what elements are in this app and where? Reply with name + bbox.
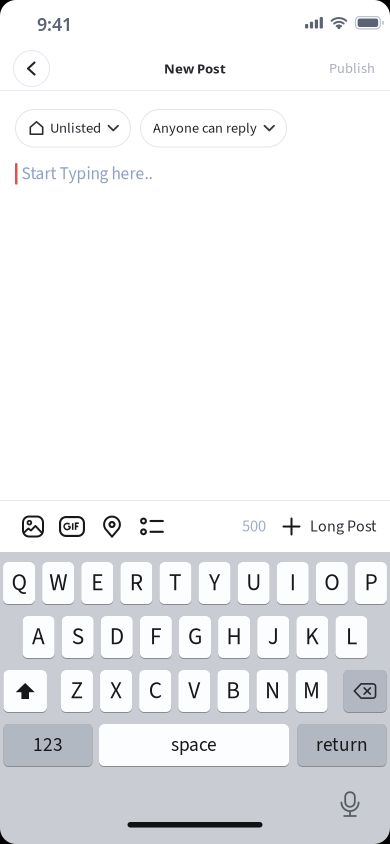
- staticText: T: [169, 566, 182, 600]
- staticText: Publish: [329, 58, 375, 79]
- staticText: O: [324, 566, 339, 600]
- button[interactable]: A: [23, 616, 55, 659]
- staticText: R: [130, 566, 143, 600]
- staticText: H: [227, 620, 242, 654]
- staticText: U: [246, 566, 261, 600]
- button[interactable]: R: [120, 562, 152, 605]
- button[interactable]: Unlisted: [15, 109, 131, 147]
- staticText: C: [149, 674, 162, 708]
- staticText: X: [110, 674, 122, 708]
- staticText: Y: [209, 566, 220, 600]
- staticText: Long Post: [310, 515, 376, 538]
- button[interactable]: Publish: [329, 58, 375, 79]
- staticText: Q: [12, 566, 27, 600]
- staticText: Z: [70, 674, 83, 708]
- staticText: N: [265, 674, 280, 708]
- staticText: M: [303, 674, 320, 708]
- staticText: S: [72, 620, 84, 654]
- button[interactable]: 123: [3, 724, 92, 767]
- staticText: P: [364, 566, 377, 600]
- button[interactable]: Dictate: [330, 784, 370, 824]
- staticText: 500: [242, 515, 266, 538]
- button[interactable]: Shift: [3, 670, 47, 713]
- button[interactable]: E: [81, 562, 113, 605]
- button[interactable]: W: [42, 562, 74, 605]
- staticText: space: [171, 731, 217, 759]
- button[interactable]: return: [297, 724, 386, 767]
- button[interactable]: Delete: [344, 670, 387, 713]
- staticText: J: [268, 620, 279, 654]
- staticText: G: [188, 620, 202, 654]
- button[interactable]: Add location: [102, 515, 123, 537]
- button[interactable]: K: [296, 616, 328, 659]
- staticText: I: [290, 566, 296, 600]
- staticText: F: [150, 620, 162, 654]
- button[interactable]: N: [256, 670, 288, 713]
- button[interactable]: Add photo: [22, 515, 44, 537]
- button[interactable]: Add GIF: [59, 516, 85, 537]
- button[interactable]: G: [179, 616, 211, 659]
- staticText: 123: [33, 731, 63, 759]
- staticText: E: [91, 566, 103, 600]
- button[interactable]: Add poll: [140, 517, 164, 535]
- staticText: B: [226, 674, 240, 708]
- staticText: A: [32, 620, 45, 654]
- button[interactable]: U: [238, 562, 270, 605]
- button[interactable]: S: [62, 616, 94, 659]
- button[interactable]: Y: [199, 562, 231, 605]
- staticText: L: [346, 620, 357, 654]
- button[interactable]: X: [100, 670, 132, 713]
- staticText: Anyone can reply: [153, 118, 257, 138]
- button[interactable]: L: [335, 616, 367, 659]
- staticText: V: [188, 674, 200, 708]
- button[interactable]: O: [316, 562, 348, 605]
- button[interactable]: D: [101, 616, 133, 659]
- button[interactable]: B: [217, 670, 249, 713]
- button[interactable]: I: [277, 562, 309, 605]
- staticText: Unlisted: [50, 118, 101, 139]
- staticText: W: [49, 566, 67, 600]
- button[interactable]: Q: [3, 562, 35, 605]
- button[interactable]: Z: [61, 670, 93, 713]
- button[interactable]: H: [218, 616, 250, 659]
- button[interactable]: Anyone can reply: [140, 109, 287, 147]
- button[interactable]: V: [178, 670, 210, 713]
- staticText: New Post: [164, 59, 226, 77]
- button[interactable]: space: [99, 724, 289, 767]
- button[interactable]: T: [159, 562, 191, 605]
- button[interactable]: P: [355, 562, 387, 605]
- staticText: 9:41: [37, 12, 72, 36]
- button[interactable]: C: [139, 670, 171, 713]
- staticText: return: [316, 731, 368, 759]
- staticText: Start Typing here..: [21, 161, 152, 186]
- button[interactable]: J: [257, 616, 289, 659]
- button[interactable]: F: [140, 616, 172, 659]
- button[interactable]: Back: [13, 50, 50, 87]
- button[interactable]: M: [295, 670, 327, 713]
- button[interactable]: Long Post: [283, 515, 376, 538]
- staticText: D: [110, 620, 124, 654]
- staticText: K: [305, 620, 319, 654]
